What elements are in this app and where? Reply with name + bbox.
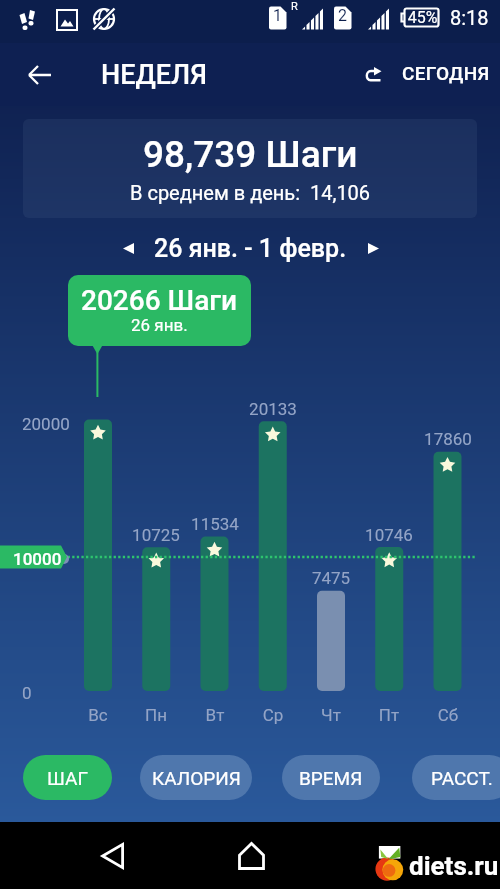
staticText: 0 [22,683,32,703]
staticText: 11534 [180,514,250,534]
button[interactable]: Back [18,53,62,97]
staticText: R [291,0,298,13]
button[interactable]: РАССТ. [412,755,500,800]
button[interactable]: КАЛОРИЯ [140,755,252,800]
staticText: 8:18 [450,6,489,29]
staticText: 20133 [238,399,308,419]
staticText: КАЛОРИЯ [152,767,241,789]
staticText: СЕГОДНЯ [402,62,490,84]
staticText: НЕДЕЛЯ [101,59,207,91]
staticText: В среднем в день: 14,106 [130,181,371,204]
staticText: Пн [121,705,191,725]
button[interactable]: 20266 Шаги [68,275,251,346]
staticText: diets.ru [409,851,499,881]
staticText: Сб [413,705,483,725]
staticText: 20000 [22,414,70,434]
staticText: ШАГ [47,767,89,789]
staticText: 10000 [13,549,62,569]
button[interactable]: Back [84,822,140,889]
staticText: 17860 [413,429,483,449]
staticText: 10746 [354,525,424,545]
staticText: 98,739 Шаги [143,133,358,176]
button[interactable]: Next week [353,228,393,268]
staticText: Пт [354,705,424,725]
staticText: 26 янв. [131,315,188,335]
button[interactable]: Previous week [108,228,148,268]
staticText: 1 [269,6,286,25]
button[interactable]: ШАГ [23,755,112,800]
staticText: Ср [238,705,308,725]
staticText: 20266 Шаги [81,284,238,317]
staticText: РАССТ. [431,767,493,789]
staticText: Вт [180,705,250,725]
staticText: 26 янв. - 1 февр. [154,234,347,263]
staticText: Вс [63,705,133,725]
staticText: 7475 [296,568,366,588]
staticText: 10725 [121,525,191,545]
button[interactable]: Home [223,822,279,889]
button[interactable]: ВРЕМЯ [282,755,380,800]
button[interactable]: СЕГОДНЯ [365,64,490,86]
staticText: 2 [334,6,351,25]
button[interactable]: 98,739 Шаги [23,119,477,218]
staticText: 45% [406,8,439,27]
staticText: Чт [296,705,366,725]
staticText: ВРЕМЯ [299,767,363,789]
